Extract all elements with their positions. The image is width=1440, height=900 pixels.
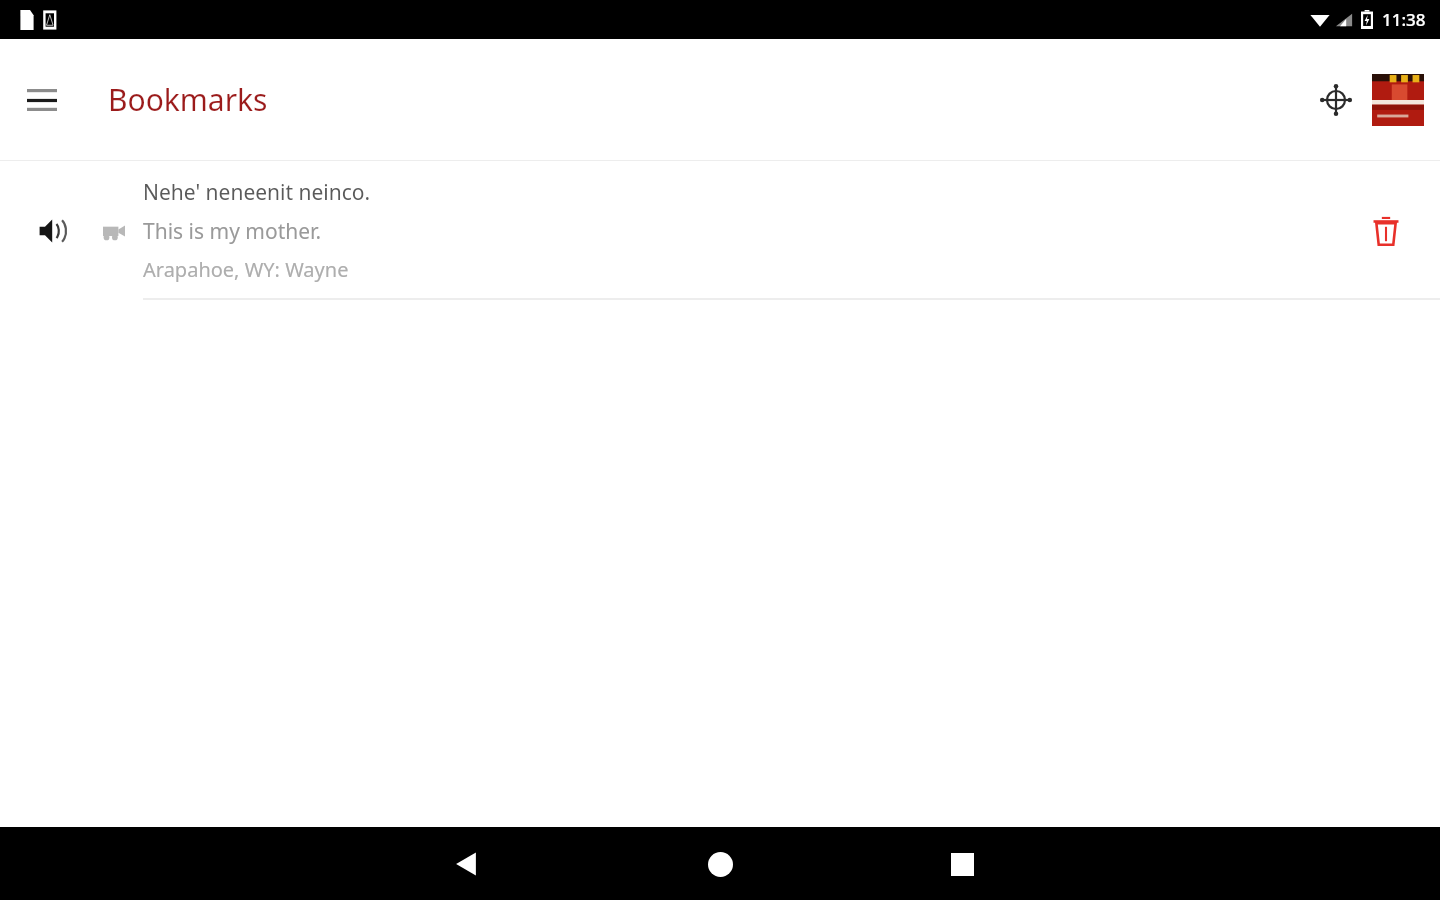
staticText: Nehe' neneenit neinco. [143,178,371,207]
button[interactable]: Video clip [92,209,136,253]
button[interactable]: Delete bookmark [1358,203,1414,259]
button[interactable]: Back [438,836,494,892]
button[interactable]: Play audio [0,161,1440,300]
button[interactable]: Home [692,836,748,892]
button[interactable]: Play audio [22,199,86,263]
staticText: 11:38 [1382,8,1426,31]
staticText: Arapahoe, WY: Wayne [143,256,349,283]
button[interactable]: Recent apps [934,836,990,892]
button[interactable]: Open navigation menu [10,68,74,132]
staticText: This is my mother. [143,217,322,246]
button[interactable]: App logo [1372,74,1424,126]
staticText: Bookmarks [108,79,268,120]
button[interactable]: Reorder bookmarks [1308,72,1364,128]
